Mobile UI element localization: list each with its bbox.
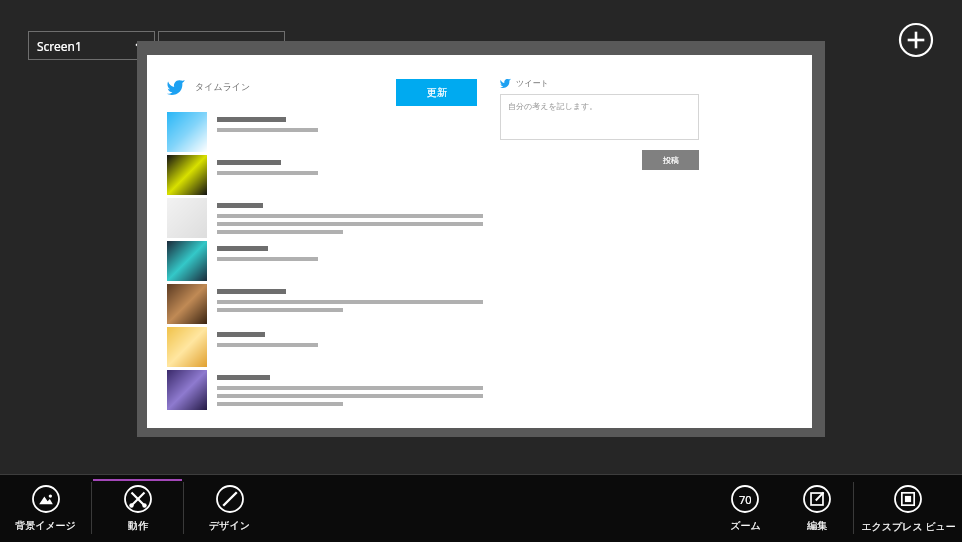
staticText: 70: [739, 492, 752, 507]
button[interactable]: 自分の考えを記します。: [500, 94, 699, 140]
button[interactable]: [167, 284, 497, 324]
staticText: ツイート: [516, 78, 549, 88]
button[interactable]: 投稿: [642, 150, 699, 170]
staticText: タイムライン: [195, 81, 251, 92]
button[interactable]: Add: [898, 22, 934, 58]
button[interactable]: [167, 370, 497, 410]
button[interactable]: 編集: [781, 474, 853, 542]
button[interactable]: デザイン: [184, 474, 275, 542]
button[interactable]: [158, 31, 285, 60]
button[interactable]: 背景イメージ: [0, 474, 91, 542]
staticText: 投稿: [663, 155, 679, 165]
button[interactable]: 更新: [396, 79, 477, 106]
button[interactable]: 動作: [92, 474, 183, 542]
button[interactable]: [167, 241, 497, 281]
staticText: エクスプレス ビュー: [861, 519, 956, 533]
button[interactable]: [167, 198, 497, 238]
staticText: 自分の考えを記します。: [508, 101, 598, 111]
button[interactable]: 70: [709, 474, 781, 542]
button[interactable]: [167, 112, 497, 152]
staticText: デザイン: [209, 519, 250, 532]
staticText: 背景イメージ: [15, 519, 76, 532]
staticText: ズーム: [730, 519, 761, 532]
button[interactable]: Screen1: [28, 31, 155, 60]
button[interactable]: [167, 327, 497, 367]
staticText: 編集: [807, 519, 827, 532]
button[interactable]: エクスプレス ビュー: [854, 474, 962, 542]
staticText: Screen1: [37, 38, 82, 54]
staticText: 更新: [427, 86, 447, 99]
staticText: 動作: [128, 519, 148, 532]
button[interactable]: [167, 155, 497, 195]
